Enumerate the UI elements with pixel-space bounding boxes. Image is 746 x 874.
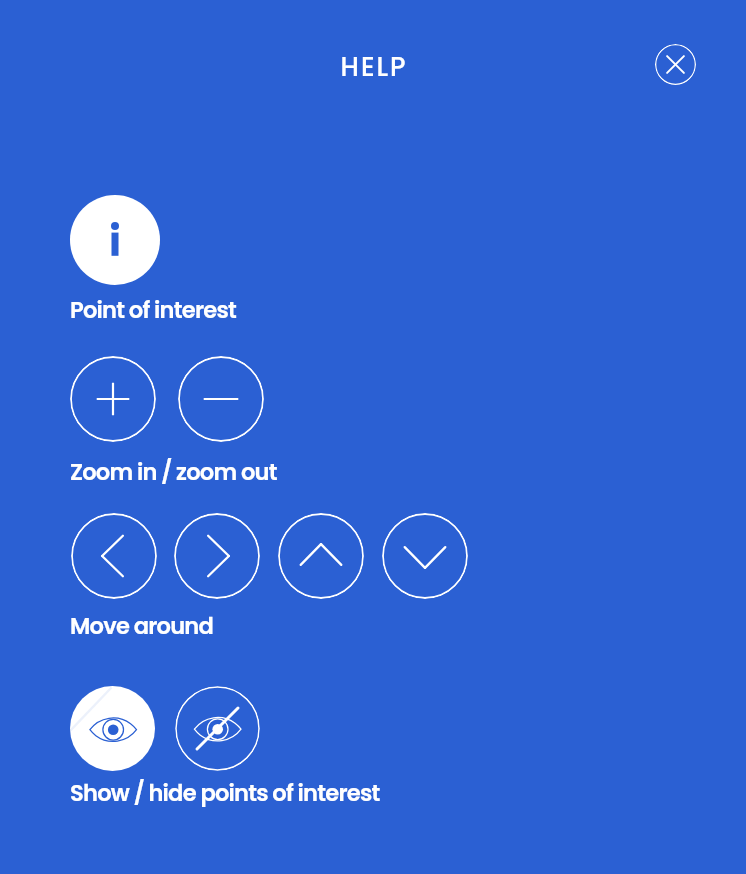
button[interactable]: Zoom in: [70, 356, 156, 442]
button[interactable]: Show points of interest: [70, 686, 155, 771]
button[interactable]: Close: [655, 44, 696, 85]
button[interactable]: Move down: [382, 513, 468, 599]
button[interactable]: Move up: [278, 513, 364, 599]
staticText: Zoom in / zoom out: [70, 456, 277, 488]
staticText: HELP: [1, 49, 746, 85]
button[interactable]: Point of interest: [70, 195, 160, 285]
staticText: Move around: [70, 610, 214, 642]
button[interactable]: Move left: [71, 513, 157, 599]
staticText: Point of interest: [70, 294, 236, 326]
button[interactable]: Zoom out: [178, 356, 264, 442]
staticText: Show / hide points of interest: [70, 777, 380, 809]
button[interactable]: Hide points of interest: [175, 686, 260, 771]
button[interactable]: Move right: [174, 513, 260, 599]
